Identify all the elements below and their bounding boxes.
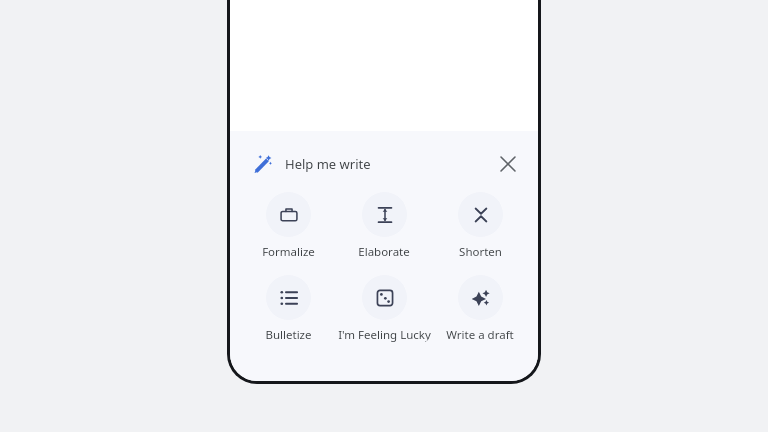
- button[interactable]: Formalize: [240, 192, 336, 260]
- staticText: Bulletize: [265, 327, 312, 343]
- staticText: I'm Feeling Lucky: [338, 327, 431, 343]
- button[interactable]: Shorten: [432, 192, 528, 260]
- staticText: Elaborate: [358, 244, 410, 260]
- button[interactable]: Elaborate: [336, 192, 432, 260]
- button[interactable]: Bulletize: [240, 275, 336, 343]
- button[interactable]: Close: [492, 148, 524, 180]
- staticText: Help me write: [285, 155, 371, 173]
- staticText: Write a draft: [446, 327, 514, 343]
- staticText: Formalize: [262, 244, 315, 260]
- staticText: Shorten: [459, 244, 502, 260]
- button[interactable]: I'm Feeling Lucky: [336, 275, 432, 343]
- button[interactable]: Write a draft: [432, 275, 528, 343]
